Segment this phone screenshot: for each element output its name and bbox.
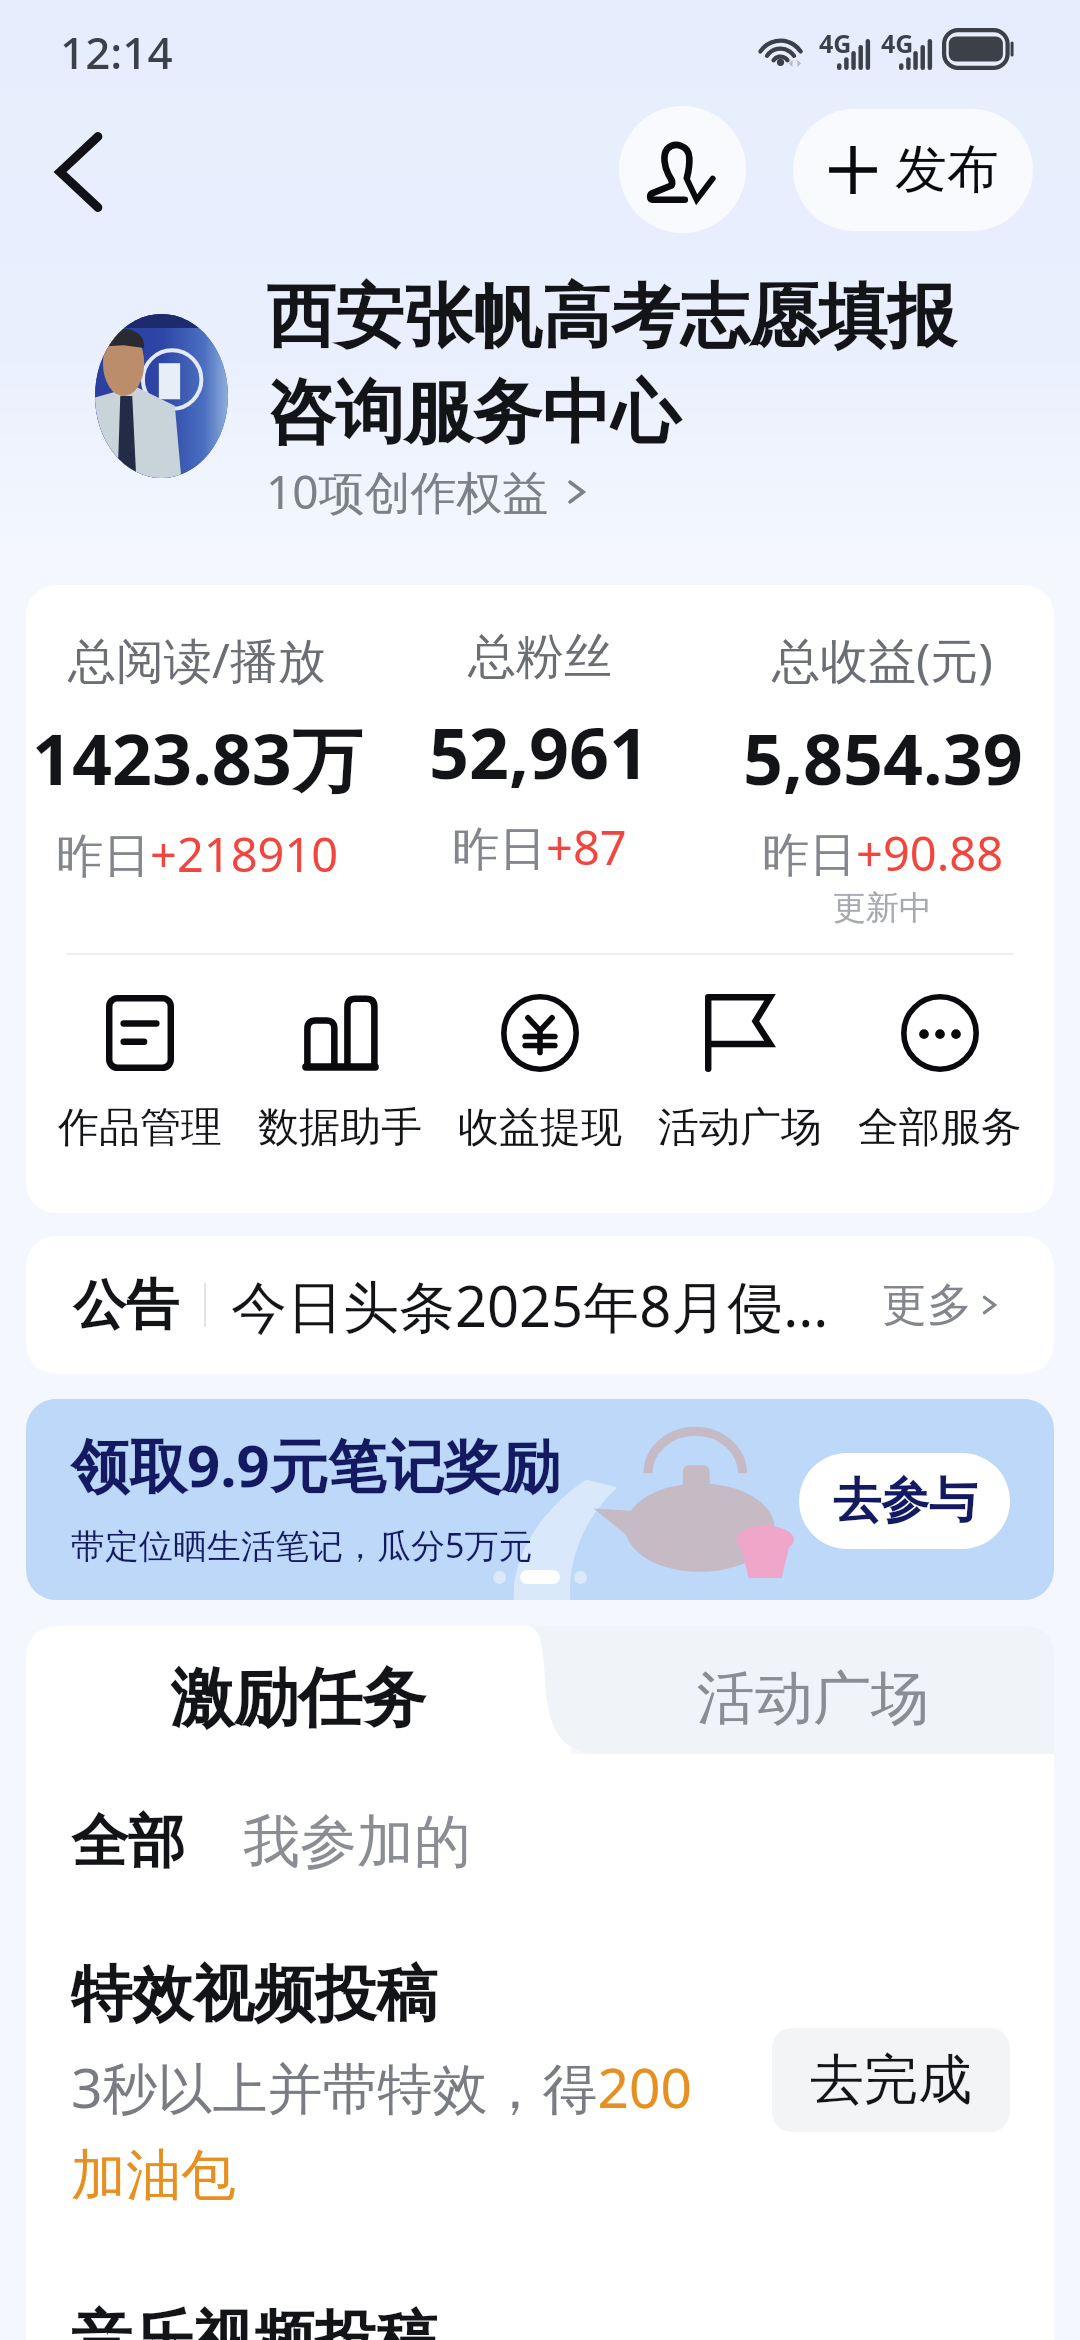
button[interactable]: 总收益(元) (711, 627, 1054, 929)
staticText: 3秒以上并带特效，得200 (71, 2049, 692, 2124)
staticText: 总阅读/播放 (68, 627, 326, 693)
staticText: 5,854.39 (743, 710, 1023, 805)
staticText: 52,961 (429, 704, 650, 799)
staticText: 发布 (895, 137, 999, 203)
button[interactable]: Creator profile (619, 106, 746, 233)
staticText: 总收益(元) (772, 627, 993, 693)
button[interactable]: 发布 (793, 109, 1033, 231)
staticText: 去参与 (833, 1471, 977, 1531)
button[interactable]: 领取9.9元笔记奖励 (26, 1399, 1054, 1600)
button[interactable]: 10项创作权益 (266, 460, 591, 523)
button[interactable]: 激励任务 (26, 1626, 571, 1754)
button[interactable]: 全部 (71, 1806, 185, 1878)
button[interactable]: Avatar (95, 314, 228, 478)
staticText: 昨日+87 (452, 815, 627, 879)
staticText: 公告 (73, 1272, 179, 1339)
button[interactable]: 活动广场 (509, 1626, 1054, 1754)
staticText: 10项创作权益 (266, 460, 549, 523)
staticText: 音乐视频投稿 (71, 2301, 437, 2340)
staticText: 昨日+218910 (56, 822, 339, 886)
button[interactable]: Back (30, 122, 130, 222)
staticText: 更多 (882, 1277, 972, 1334)
staticText: 总粉丝 (468, 627, 612, 687)
staticText: 加油包 (71, 2141, 236, 2210)
button[interactable]: 总粉丝 (368, 627, 711, 879)
button[interactable]: 作品管理 (40, 994, 240, 1154)
staticText: 激励任务 (170, 1658, 426, 1739)
button[interactable]: 去完成 (772, 2028, 1010, 2132)
staticText: 昨日+90.88 (762, 821, 1004, 885)
staticText: 特效视频投稿 (71, 1956, 437, 2033)
staticText: 带定位晒生活笔记，瓜分5万元 (71, 1522, 533, 1568)
button[interactable]: 公告 (26, 1236, 1054, 1374)
button[interactable]: 我参加的 (243, 1806, 471, 1878)
staticText: 活动广场 (658, 1102, 822, 1154)
button[interactable]: 全部服务 (840, 994, 1040, 1154)
staticText: 更新中 (833, 887, 932, 929)
staticText: 今日头条2025年8月侵... (231, 1267, 829, 1343)
staticText: 数据助手 (258, 1102, 422, 1154)
staticText: 全部服务 (858, 1102, 1022, 1154)
staticText: 1423.83万 (32, 710, 362, 806)
staticText: 12:14 (60, 22, 173, 82)
staticText: 作品管理 (58, 1102, 222, 1154)
button[interactable]: 收益提现 (440, 994, 640, 1154)
button[interactable]: 活动广场 (640, 994, 840, 1154)
staticText: 领取9.9元笔记奖励 (71, 1425, 560, 1504)
button[interactable]: 总阅读/播放 (26, 627, 368, 886)
staticText: 去完成 (810, 2046, 972, 2114)
staticText: 4G (819, 26, 852, 60)
staticText: 4G (881, 26, 914, 60)
staticText: 收益提现 (458, 1102, 622, 1154)
staticText: 活动广场 (697, 1662, 929, 1735)
button[interactable]: 数据助手 (240, 994, 440, 1154)
staticText: 咨询服务中心 (266, 370, 680, 457)
button[interactable]: 去参与 (799, 1453, 1010, 1549)
staticText: 西安张帆高考志愿填报 (266, 274, 956, 361)
